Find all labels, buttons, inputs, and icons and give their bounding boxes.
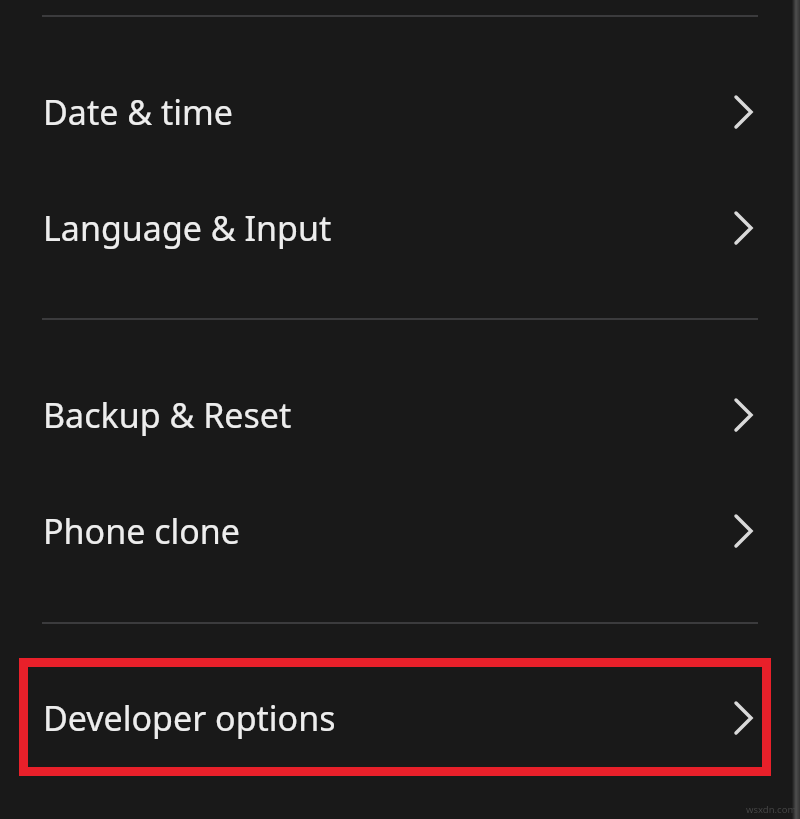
- staticText: wsxdn.com: [746, 803, 797, 816]
- staticText: Developer options: [43, 695, 336, 741]
- button[interactable]: Developer options: [0, 660, 800, 776]
- button[interactable]: Language & Input: [0, 170, 800, 286]
- button[interactable]: Date & time: [0, 54, 800, 170]
- staticText: Phone clone: [43, 508, 241, 554]
- staticText: Date & time: [43, 89, 233, 135]
- staticText: Language & Input: [43, 205, 332, 251]
- staticText: Backup & Reset: [43, 392, 292, 438]
- button[interactable]: Phone clone: [0, 473, 800, 589]
- button[interactable]: Backup & Reset: [0, 357, 800, 473]
